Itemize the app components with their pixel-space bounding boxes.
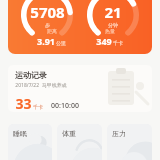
staticText: 千卡 xyxy=(33,104,43,110)
staticText: 压力 xyxy=(112,129,126,138)
staticText: 21 xyxy=(104,2,122,22)
staticText: 5708 xyxy=(30,2,65,22)
staticText: 步 xyxy=(45,22,50,28)
button[interactable]: 体重 xyxy=(57,124,102,160)
staticText: 体重 xyxy=(62,129,76,138)
staticText: 睡眠 xyxy=(13,129,27,138)
staticText: 公里 xyxy=(56,40,66,46)
staticText: 千卡 xyxy=(113,40,123,46)
staticText: 距离 xyxy=(47,28,57,34)
button[interactable]: 睡眠 xyxy=(8,124,52,160)
staticText: 00:10:00 xyxy=(51,101,79,111)
staticText: 3.91 xyxy=(37,35,55,47)
staticText: 运动记录 xyxy=(15,70,47,80)
button[interactable]: 5708 xyxy=(8,0,152,54)
button[interactable]: 压力 xyxy=(107,124,152,160)
staticText: 349 xyxy=(96,35,112,47)
staticText: 33 xyxy=(15,94,32,112)
staticText: 2018/7/22 马甲线养成 xyxy=(15,82,67,89)
staticText: 热量 xyxy=(105,28,115,34)
staticText: 分钟 xyxy=(108,22,118,28)
button[interactable]: 运动记录 xyxy=(8,65,152,112)
